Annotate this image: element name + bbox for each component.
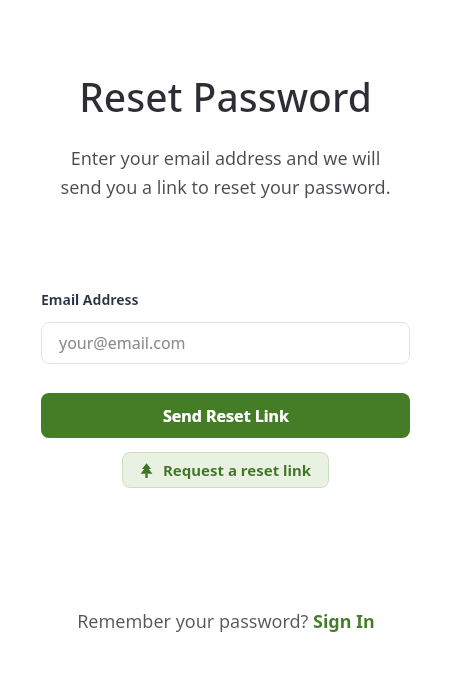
button[interactable]: Remember your password? Sign In	[0, 603, 451, 640]
staticText: your@email.com	[59, 332, 186, 354]
button[interactable]: your@email.com	[41, 322, 410, 364]
staticText: Reset Password	[0, 70, 451, 123]
button[interactable]: Send Reset Link	[41, 393, 410, 438]
button[interactable]: Tree	[122, 452, 329, 488]
staticText: Enter your email address and we will sen…	[30, 146, 421, 199]
staticText: Remember your password? Sign In	[77, 609, 375, 634]
staticText: Request a reset link	[163, 460, 312, 480]
staticText: Email Address	[41, 290, 139, 309]
other: Tree	[139, 463, 154, 478]
staticText: Send Reset Link	[163, 405, 289, 427]
